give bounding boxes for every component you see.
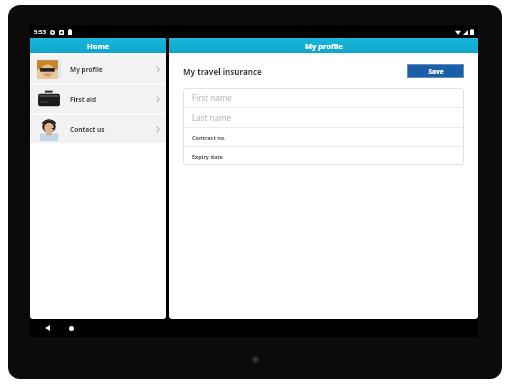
button[interactable]: Last name xyxy=(183,108,464,127)
button[interactable]: First aid xyxy=(30,85,166,113)
button[interactable]: Back xyxy=(40,321,54,335)
staticText: Last name xyxy=(192,112,231,123)
button[interactable]: First name xyxy=(183,88,464,107)
staticText: 5:53 xyxy=(34,28,46,36)
staticText: Expiry date xyxy=(192,153,223,160)
button[interactable]: Save xyxy=(408,65,463,77)
staticText: Contract no. xyxy=(192,134,226,141)
staticText: My profile xyxy=(305,41,343,51)
staticText: Home xyxy=(87,41,110,51)
button[interactable]: Contract no. xyxy=(183,128,464,146)
button[interactable]: Contact us xyxy=(30,115,166,143)
staticText: First name xyxy=(192,92,232,103)
staticText: My profile xyxy=(70,65,156,74)
button[interactable]: Expiry date xyxy=(183,147,464,165)
staticText: Save xyxy=(428,67,444,76)
button[interactable]: Home xyxy=(64,321,78,335)
button[interactable]: My profile xyxy=(30,55,166,83)
staticText: My travel insurance xyxy=(183,66,407,77)
staticText: Contact us xyxy=(70,125,156,134)
staticText: First aid xyxy=(70,95,156,104)
